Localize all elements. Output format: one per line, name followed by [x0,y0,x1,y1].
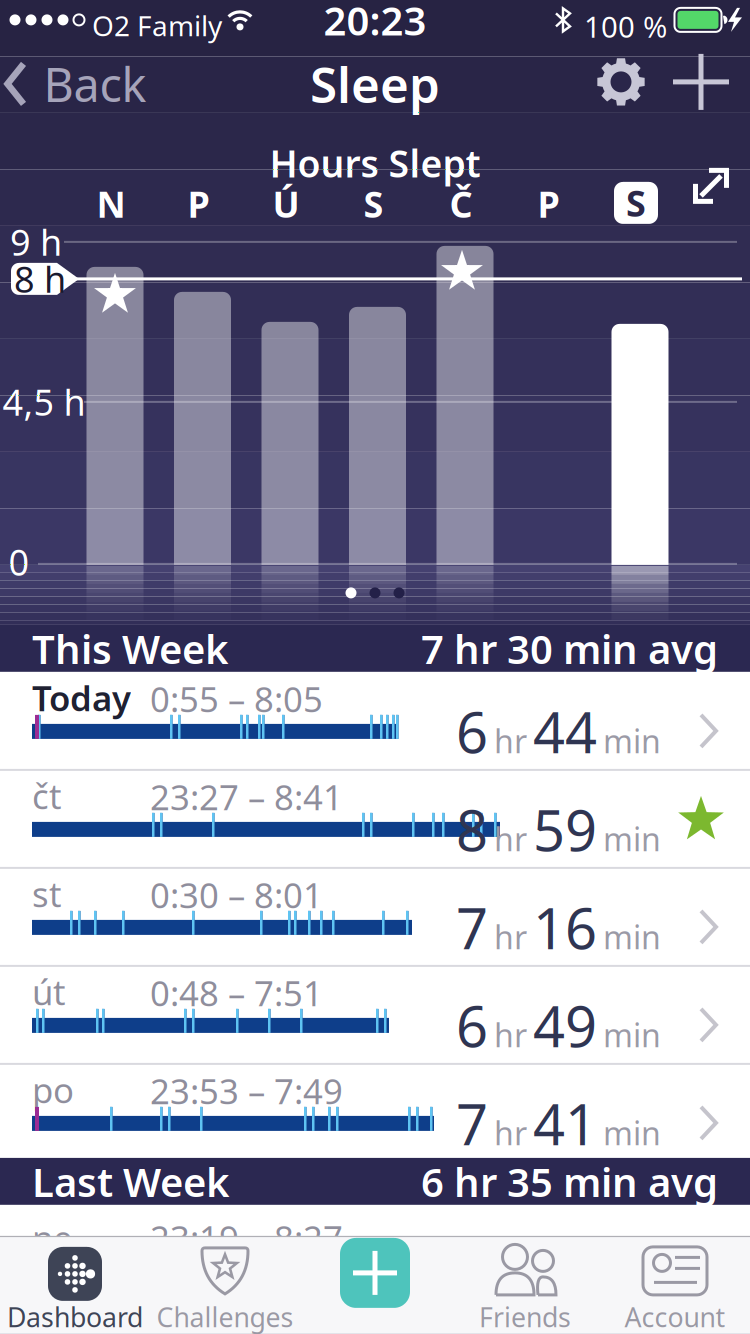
staticText: 0:30 – 8:01 [150,872,323,918]
staticText: čt [32,773,62,819]
staticText: O2 Family [92,7,222,44]
button[interactable]: st [0,868,750,965]
staticText: 49 [533,988,597,1063]
staticText: 8 [456,792,488,867]
staticText: N [96,180,125,228]
staticText: min [603,719,661,762]
button[interactable]: Today [0,672,750,769]
staticText: Dashboard [7,1299,143,1334]
button[interactable]: Challenges [150,1236,300,1334]
button[interactable]: po [0,1064,750,1161]
staticText: 0 [8,538,29,586]
button[interactable]: Back [3,53,146,115]
staticText: 100 % [584,7,667,46]
button[interactable]: S [614,182,658,224]
staticText: S [363,180,383,228]
staticText: Ú [272,180,299,228]
staticText: ne [32,1215,73,1261]
staticText: 0:55 – 8:05 [150,676,323,722]
button[interactable]: Account [600,1236,750,1334]
staticText: P [537,180,559,228]
button[interactable] [340,1238,410,1308]
staticText: Today [32,675,131,721]
staticText: 59 [533,792,597,867]
button[interactable] [595,56,647,108]
staticText: 23:53 – 7:49 [150,1068,343,1114]
staticText: 4,5 h [2,378,85,426]
staticText: Challenges [156,1299,293,1334]
staticText: S [626,179,646,227]
staticText: hr [494,1111,527,1154]
staticText: Hours Slept [269,138,480,188]
staticText: Č [449,180,472,228]
staticText: Friends [479,1299,571,1334]
staticText: 7 [456,1086,488,1161]
staticText: hr [494,719,527,762]
staticText: 0:48 – 7:51 [150,970,323,1016]
staticText: 6 hr 35 min avg [421,1155,718,1208]
staticText: 20:23 [323,0,426,46]
staticText: 6 [456,694,488,769]
button[interactable] [693,168,729,204]
staticText: min [603,817,661,860]
staticText: Sleep [310,51,440,117]
staticText: 16 [533,890,597,965]
staticText: P [187,180,209,228]
button[interactable]: Dashboard [0,1236,150,1334]
button[interactable] [673,54,729,110]
staticText: hr [494,817,527,860]
staticText: Back [43,53,146,115]
staticText: hr [494,915,527,958]
staticText: This Week [32,622,229,675]
staticText: 9 h [10,218,62,266]
staticText: 7 hr 30 min avg [421,622,718,675]
staticText: 41 [533,1086,597,1161]
staticText: po [32,1067,74,1113]
staticText: min [603,915,661,958]
button[interactable]: út [0,966,750,1063]
staticText: Last Week [32,1155,230,1208]
staticText: 7 [456,890,488,965]
staticText: 23:27 – 8:41 [150,774,343,820]
button[interactable]: čt [0,770,750,867]
staticText: út [32,969,66,1015]
button[interactable]: Friends [450,1236,600,1334]
staticText: 8 h [14,255,66,303]
staticText: Account [624,1299,725,1334]
staticText: st [32,871,62,917]
staticText: hr [494,1013,527,1056]
staticText: min [603,1111,661,1154]
staticText: 44 [533,694,597,769]
staticText: 6 [456,988,488,1063]
staticText: 23:19 – 8:27 [150,1215,343,1261]
staticText: min [603,1013,661,1056]
